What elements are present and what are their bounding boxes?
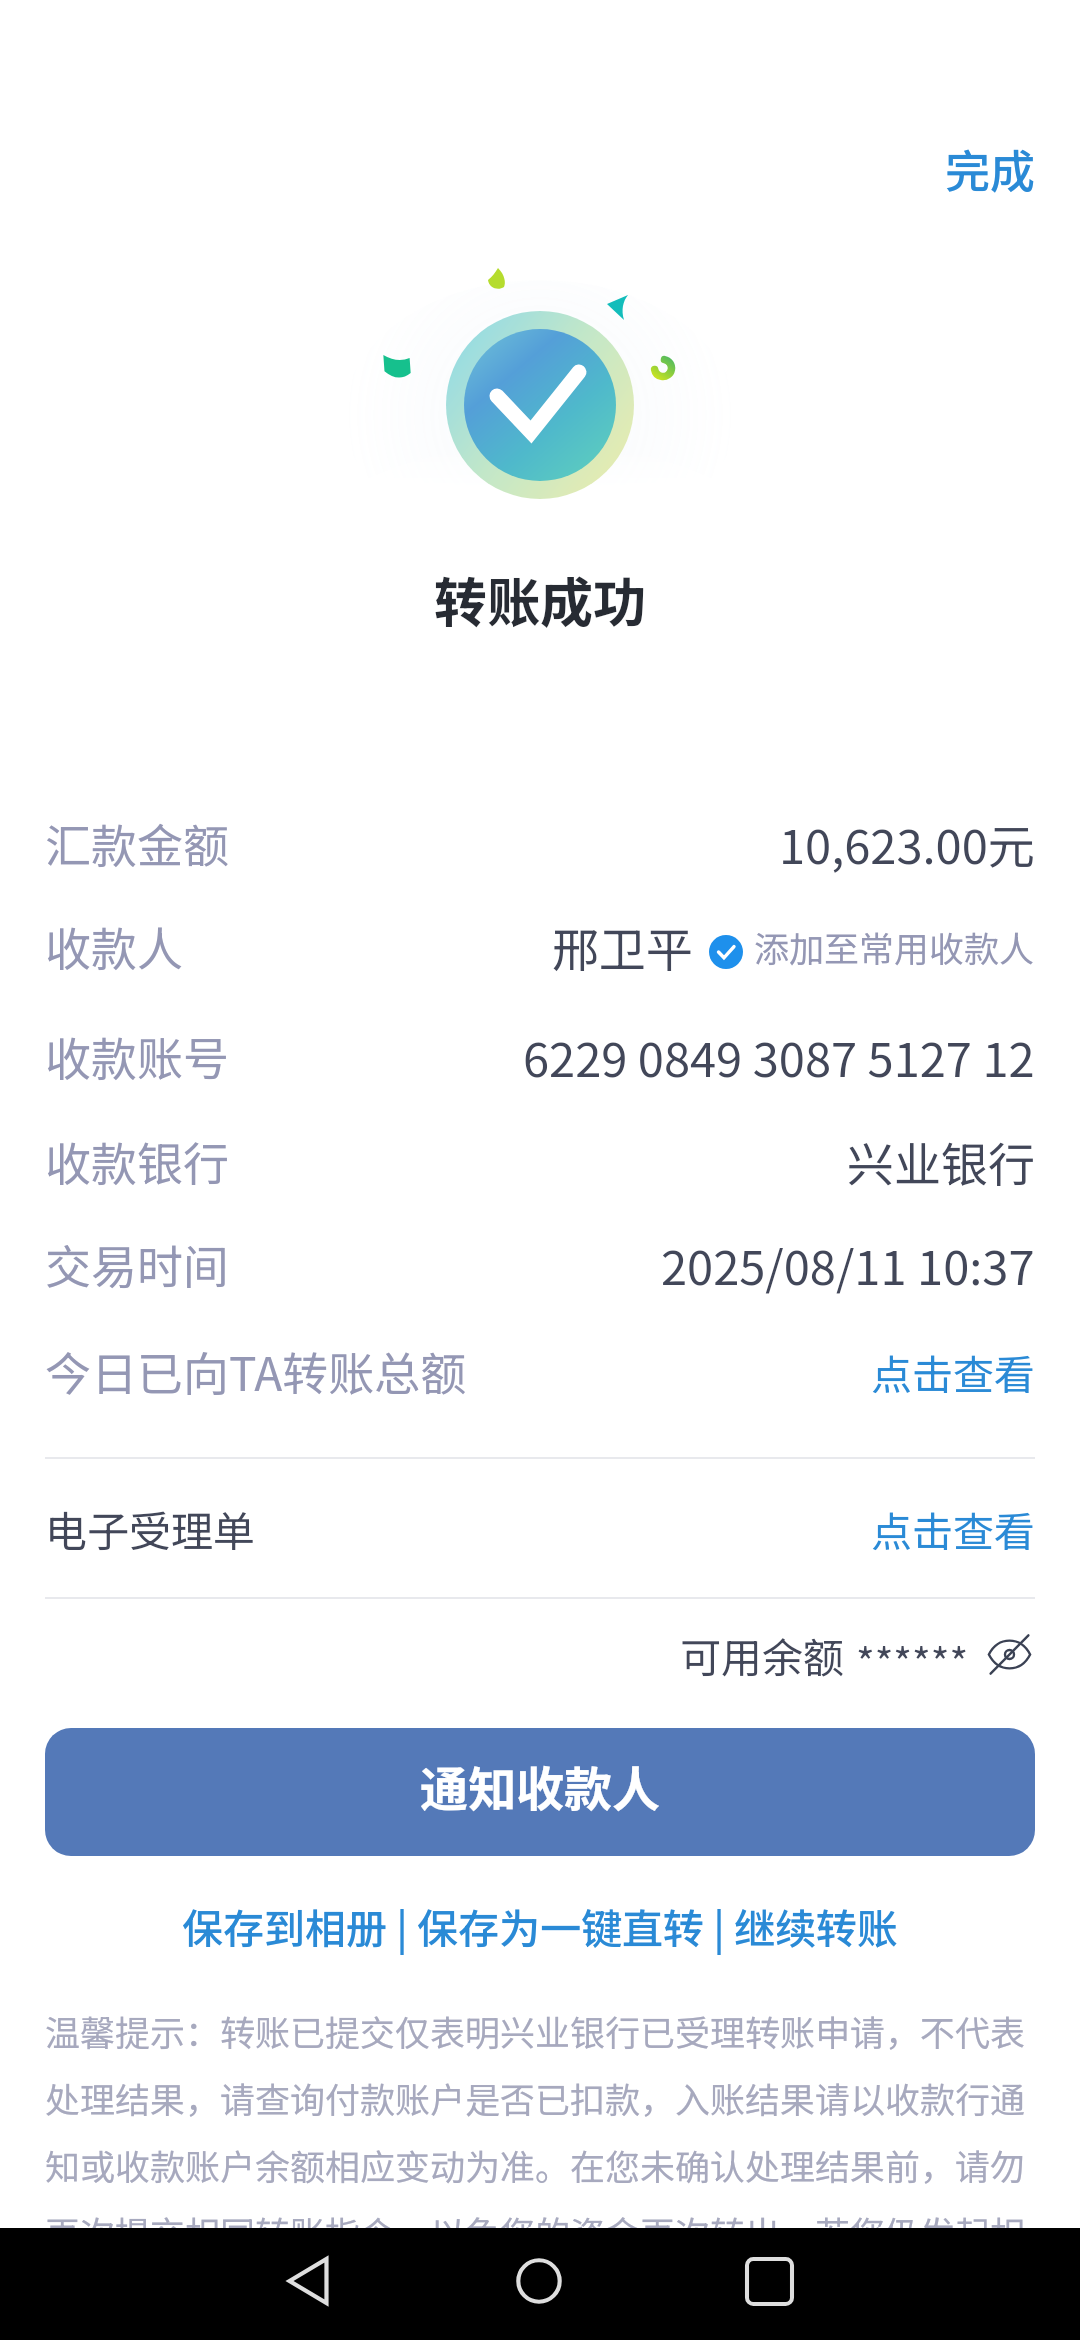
staticText: 电子受理单: [45, 1498, 256, 1559]
staticText: 收款人: [45, 913, 183, 980]
staticText: 6229 0849 3087 5127 12: [523, 1022, 1035, 1090]
staticText: 兴业银行: [847, 1127, 1035, 1195]
button[interactable]: 通知收款人: [45, 1728, 1035, 1856]
button[interactable]: Show available balance: [983, 1628, 1035, 1680]
button[interactable]: 继续转账: [734, 1896, 898, 1955]
staticText: |: [387, 1896, 417, 1955]
staticText: 交易时间: [45, 1231, 229, 1298]
staticText: 点击查看: [871, 1342, 1035, 1401]
staticText: 汇款金额: [45, 810, 229, 877]
button[interactable]: Home: [484, 2231, 594, 2331]
staticText: 保存到相册: [182, 1896, 387, 1955]
staticText: 温馨提示：转账已提交仅表明兴业银行已受理转账申请，不代表处理结果，请查询付款账户…: [45, 2005, 1037, 2257]
staticText: 通知收款人: [420, 1751, 661, 1821]
staticText: 保存为一键直转: [417, 1896, 704, 1955]
button[interactable]: Recent apps: [714, 2231, 824, 2331]
button[interactable]: 保存到相册: [182, 1896, 387, 1955]
staticText: 收款银行: [45, 1128, 229, 1195]
staticText: 继续转账: [734, 1896, 898, 1955]
staticText: 完成: [945, 136, 1036, 201]
staticText: 可用余额: [680, 1625, 844, 1684]
button[interactable]: 完成: [921, 128, 1059, 208]
staticText: 收款账号: [45, 1023, 229, 1090]
staticText: 2025/08/11 10:37: [661, 1230, 1035, 1298]
button[interactable]: 保存为一键直转: [417, 1896, 704, 1955]
staticText: 今日已向TA转账总额: [45, 1338, 467, 1405]
button[interactable]: 点击查看: [871, 1342, 1035, 1401]
staticText: ******: [856, 1631, 969, 1689]
button[interactable]: Back: [253, 2231, 363, 2331]
button[interactable]: 电子受理单: [0, 1459, 1080, 1598]
staticText: 邢卫平: [552, 912, 693, 980]
staticText: 点击查看: [871, 1499, 1035, 1558]
staticText: |: [704, 1896, 734, 1955]
button[interactable]: 添加至常用收款人: [709, 921, 1035, 972]
staticText: 添加至常用收款人: [754, 921, 1035, 972]
staticText: 10,623.00元: [779, 809, 1035, 877]
staticText: 转账成功: [0, 561, 1080, 638]
